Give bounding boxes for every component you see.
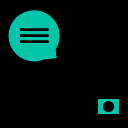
button[interactable]: Camera bbox=[98, 99, 119, 114]
button[interactable]: Messages bbox=[9, 9, 63, 63]
